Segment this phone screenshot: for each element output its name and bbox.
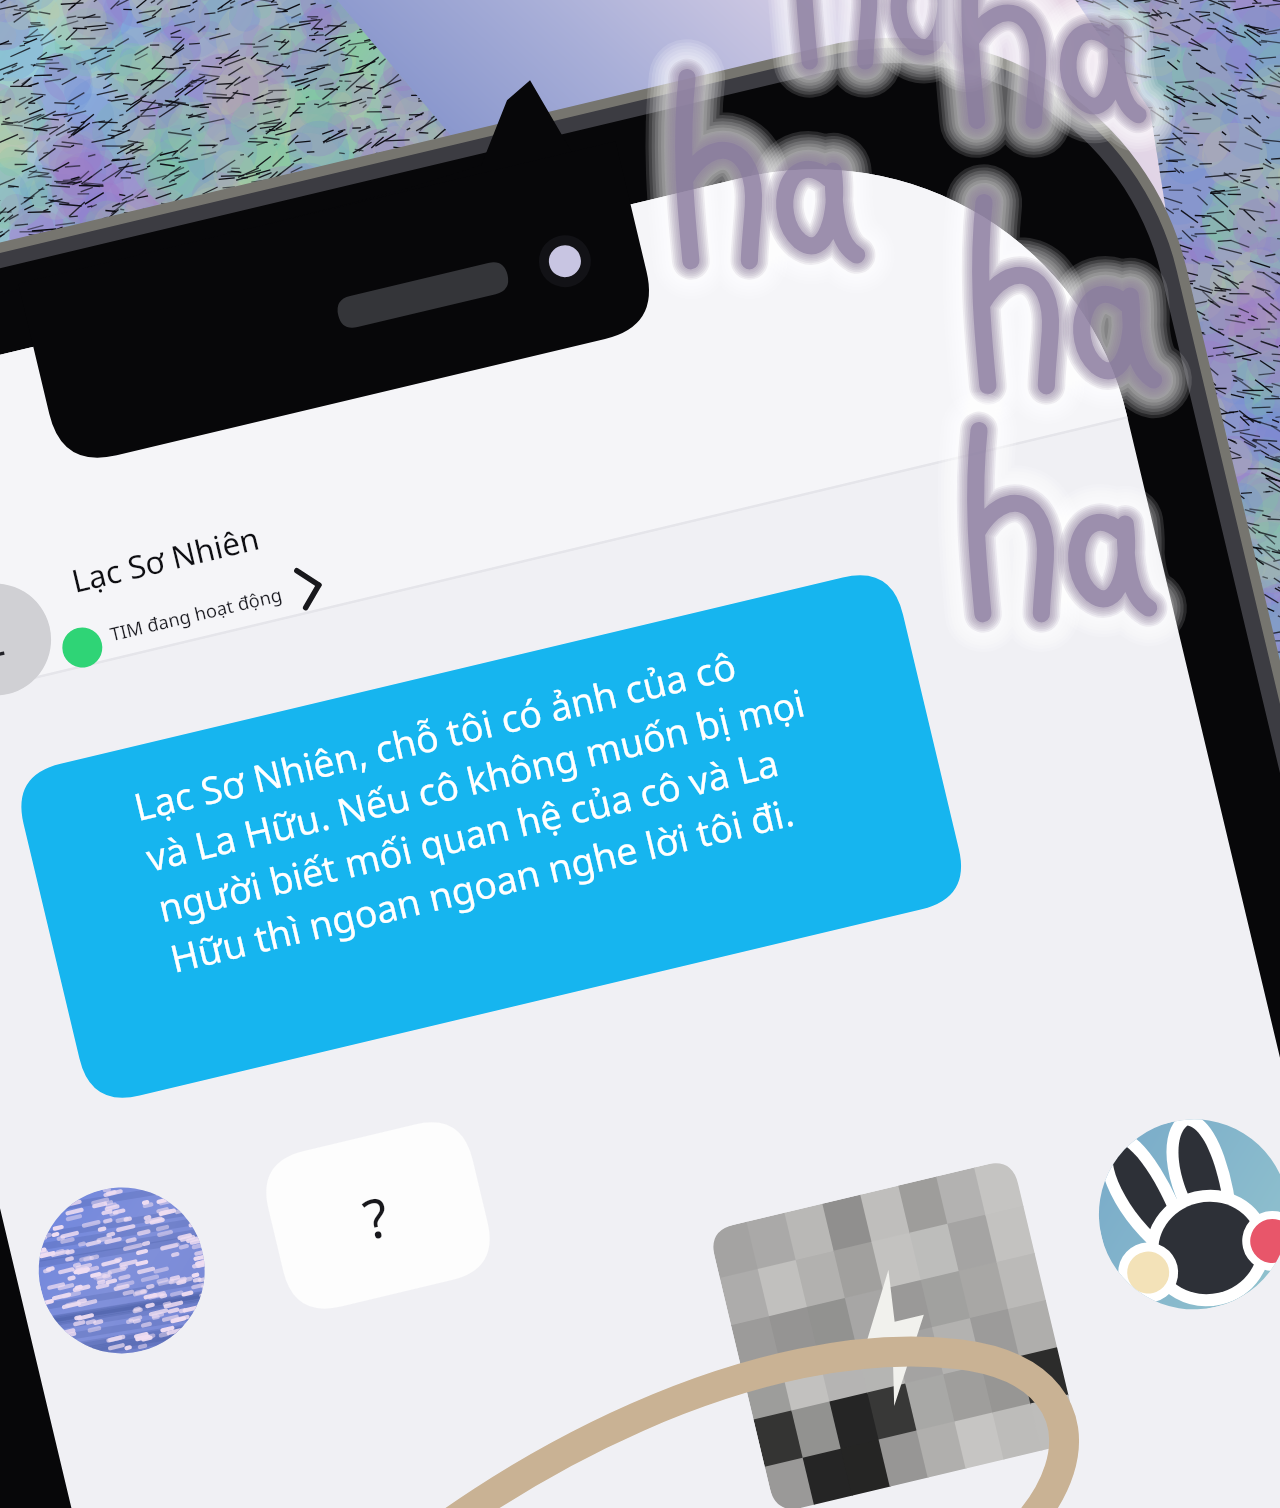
- button[interactable]: [0, 0, 1280, 1508]
